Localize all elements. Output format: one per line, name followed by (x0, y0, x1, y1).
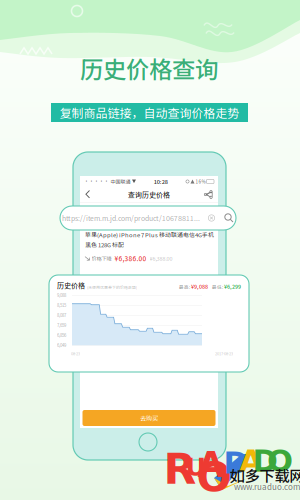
staticText: A (239, 443, 263, 479)
staticText: 价格下降 (91, 255, 111, 262)
button[interactable]: Back (85, 190, 91, 199)
button[interactable]: 苏宁易购 (80, 339, 218, 356)
staticText: 9,088 (57, 292, 66, 298)
staticText: 苏宁易购 (100, 343, 124, 351)
staticText: ¥6,386.00 (114, 254, 146, 263)
staticText: 查询历史价格 (128, 189, 170, 199)
staticText: U (185, 452, 206, 482)
button[interactable]: Share (204, 190, 213, 199)
staticText: O (196, 453, 231, 500)
staticText: R (163, 444, 196, 494)
staticText: (未使用优惠券下的价格走势) (87, 284, 137, 290)
staticText: 起 (194, 344, 199, 351)
staticText: ¥6,299 (224, 282, 241, 290)
staticText: 7,659 (57, 322, 66, 328)
staticText: 如多下载网 (229, 464, 300, 486)
staticText: A (197, 445, 224, 485)
staticText: 历史价格 (57, 280, 85, 290)
staticText: ••••• (84, 178, 109, 185)
staticText: https://item.m.jd.com/product/10678811..… (62, 213, 200, 223)
staticText: 复制商品链接，自动查询价格走势 (59, 104, 239, 121)
staticText: ¥5588 (178, 343, 193, 352)
staticText: 黑色 128G 标配 (85, 240, 124, 249)
staticText: ¥9,088 (191, 282, 208, 290)
staticText: 6,049 (57, 342, 66, 348)
staticText: 起 (194, 327, 199, 334)
staticText: www.ruaduo.com (234, 481, 300, 492)
staticText: 历史价格查询 (80, 51, 218, 85)
staticText: O (267, 443, 293, 479)
staticText: 08-23 (71, 351, 80, 356)
button[interactable]: 京东商城 (80, 322, 218, 339)
staticText: 中国联通 (110, 178, 130, 185)
staticText: 10:28 (154, 177, 168, 185)
staticText: 京东商城 (100, 326, 124, 334)
staticText: 苹果(Apple) iPhone 7 Plus 移动联通电信4G手机 (85, 230, 214, 239)
staticText: 2017-08-23 (215, 351, 233, 356)
staticText: 最低: (212, 284, 223, 290)
staticText: 8,515 (57, 302, 66, 308)
staticText: 去购买 (140, 414, 158, 422)
staticText: D (223, 445, 248, 481)
staticText: 8,087 (57, 312, 66, 318)
button[interactable]: 去购买 (82, 410, 215, 426)
staticText: 6,856 (57, 332, 66, 338)
staticText: ¥5366 (178, 326, 193, 334)
staticText: ¥6,388.00 (149, 255, 172, 262)
staticText: 最高: (179, 284, 190, 290)
staticText: D (252, 443, 277, 479)
staticText: 16% (195, 178, 205, 185)
